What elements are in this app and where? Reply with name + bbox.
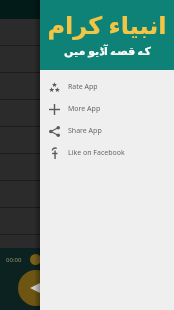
staticText: Like on Facebook <box>68 148 125 158</box>
button[interactable] <box>0 127 174 153</box>
button[interactable]: دوں کا .. <box>0 100 174 126</box>
button[interactable]: Like on Facebook <box>40 142 174 164</box>
button[interactable]: Rate App <box>40 76 174 98</box>
button[interactable] <box>0 235 174 248</box>
button[interactable]: Play <box>18 270 54 306</box>
staticText: 00:00 <box>6 256 22 264</box>
staticText: کے قصے آڈیو میں <box>64 43 151 58</box>
button[interactable] <box>0 154 174 180</box>
button[interactable] <box>0 181 174 207</box>
staticText: Share App <box>68 126 102 136</box>
button[interactable] <box>0 19 174 45</box>
button[interactable]: More App <box>40 98 174 120</box>
button[interactable] <box>0 208 174 234</box>
staticText: More App <box>68 104 101 114</box>
staticText: Rate App <box>68 82 98 92</box>
button[interactable] <box>0 73 174 99</box>
button[interactable]: Share App <box>40 120 174 142</box>
staticText: انبیاء کرام <box>47 8 167 41</box>
button[interactable]: فرشتوں .. <box>0 46 174 72</box>
